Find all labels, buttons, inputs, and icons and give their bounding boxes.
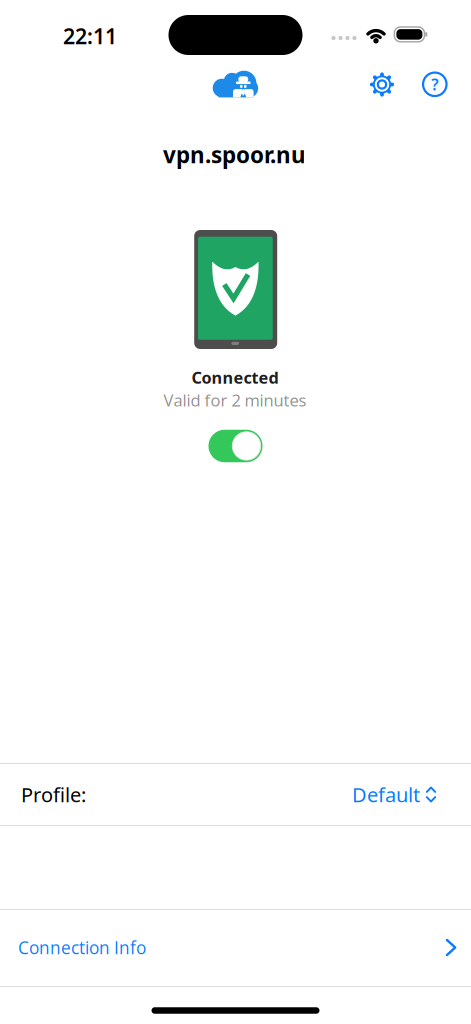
button[interactable]: Help <box>423 72 447 96</box>
button[interactable]: VPN connection <box>208 430 262 462</box>
staticText: vpn.spoor.nu <box>163 139 306 170</box>
staticText: 22:11 <box>63 22 117 50</box>
button[interactable]: Settings <box>368 70 396 98</box>
staticText: Connection Info <box>18 936 146 959</box>
button[interactable]: Connection Info <box>0 909 471 986</box>
staticText: Connected <box>191 366 278 389</box>
staticText: Valid for 2 minutes <box>163 389 306 411</box>
staticText: Default <box>352 781 420 808</box>
button[interactable]: Default <box>352 781 437 808</box>
staticText: Profile: <box>21 781 86 808</box>
staticText: ? <box>431 74 438 95</box>
